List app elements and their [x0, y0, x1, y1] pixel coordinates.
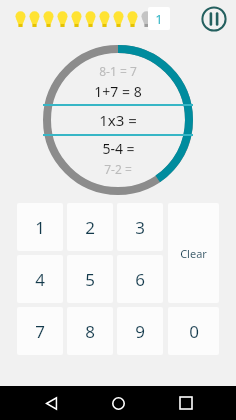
- button[interactable]: 1: [17, 203, 63, 251]
- staticText: 6: [135, 268, 145, 291]
- staticText: 3: [135, 216, 145, 239]
- button[interactable]: 9: [117, 307, 163, 355]
- button[interactable]: 1: [148, 7, 170, 30]
- staticText: 1x3 =: [99, 110, 137, 130]
- button[interactable]: 3: [117, 203, 163, 251]
- staticText: 9: [135, 320, 145, 343]
- button[interactable]: Back: [34, 386, 68, 420]
- staticText: 0: [189, 320, 199, 343]
- staticText: 1: [155, 10, 163, 28]
- button[interactable]: 0: [168, 307, 219, 355]
- button[interactable]: Pause: [200, 5, 228, 33]
- staticText: 5-4 =: [102, 139, 135, 158]
- staticText: 2: [85, 216, 95, 239]
- staticText: 7: [35, 320, 45, 343]
- button[interactable]: Recents: [169, 386, 203, 420]
- button[interactable]: 4: [17, 255, 63, 303]
- staticText: 1+7 = 8: [94, 82, 142, 101]
- staticText: 8: [85, 320, 95, 343]
- button[interactable]: Clear: [168, 203, 219, 303]
- staticText: 7-2 =: [104, 161, 132, 177]
- staticText: 4: [35, 268, 45, 291]
- button[interactable]: 5: [67, 255, 113, 303]
- button[interactable]: 6: [117, 255, 163, 303]
- button[interactable]: 8: [67, 307, 113, 355]
- staticText: Clear: [180, 246, 207, 261]
- button[interactable]: 7: [17, 307, 63, 355]
- staticText: 8-1 = 7: [99, 63, 137, 79]
- button[interactable]: 2: [67, 203, 113, 251]
- staticText: 5: [85, 268, 95, 291]
- staticText: 1: [35, 216, 45, 239]
- button[interactable]: Home: [101, 386, 135, 420]
